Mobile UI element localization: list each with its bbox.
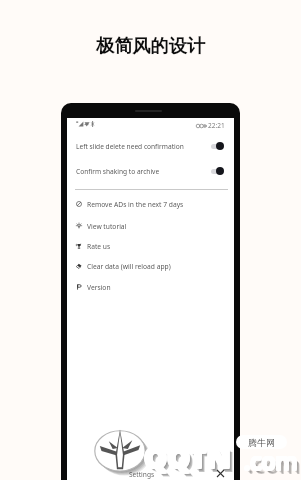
- button[interactable]: Rate us: [67, 236, 234, 256]
- staticText: .com: [245, 446, 299, 477]
- staticText: QQTN: [145, 437, 232, 476]
- button[interactable]: Close: [217, 470, 224, 477]
- staticText: .com: [245, 446, 299, 477]
- staticText: QQTN: [146, 439, 233, 478]
- button[interactable]: Remove ADs in the next 7 days: [67, 194, 234, 214]
- staticText: QQTN: [145, 438, 232, 477]
- staticText: .com: [245, 446, 299, 477]
- staticText: QQTN: [144, 437, 231, 476]
- staticText: QQTN: [147, 440, 234, 479]
- staticText: .com: [243, 446, 297, 477]
- button[interactable]: View tutorial: [67, 216, 234, 236]
- staticText: Clear data (will reload app): [87, 262, 171, 271]
- staticText: .com: [248, 449, 301, 480]
- button[interactable]: Settings: [129, 466, 155, 480]
- staticText: .com: [248, 449, 301, 480]
- staticText: Settings: [129, 470, 155, 479]
- staticText: 22:21: [208, 121, 225, 130]
- staticText: Rate us: [87, 242, 111, 251]
- staticText: .com: [247, 448, 301, 479]
- staticText: 腾牛网: [248, 437, 275, 448]
- staticText: View tutorial: [87, 222, 127, 231]
- staticText: QQTN: [143, 436, 230, 475]
- staticText: .com: [244, 444, 298, 475]
- staticText: .com: [243, 444, 297, 475]
- staticText: QQTN: [145, 438, 232, 477]
- staticText: .com: [244, 446, 298, 477]
- staticText: .com: [245, 445, 299, 476]
- staticText: QQTN: [143, 437, 230, 476]
- staticText: QQTN: [143, 438, 230, 477]
- staticText: Remove ADs in the next 7 days: [87, 200, 184, 209]
- staticText: Left slide delete need confirmation: [76, 142, 211, 151]
- staticText: .com: [244, 445, 298, 476]
- staticText: QQTN: [145, 438, 232, 477]
- staticText: Version: [87, 283, 111, 292]
- staticText: 极简风的设计: [0, 34, 301, 57]
- button[interactable]: Clear data (will reload app): [67, 256, 234, 276]
- staticText: .com: [243, 445, 297, 476]
- staticText: QQTN: [144, 438, 231, 477]
- staticText: QQTN: [148, 441, 235, 480]
- button[interactable]: Left slide delete need confirmation: [67, 134, 234, 158]
- staticText: QQTN: [144, 436, 231, 475]
- staticText: .com: [245, 444, 299, 475]
- staticText: .com: [246, 447, 300, 478]
- button[interactable]: Version: [67, 277, 234, 297]
- staticText: QQTN: [145, 436, 232, 475]
- staticText: Confirm shaking to archive: [76, 167, 211, 176]
- staticText: QQTN: [148, 441, 235, 480]
- button[interactable]: Confirm shaking to archive: [67, 159, 234, 183]
